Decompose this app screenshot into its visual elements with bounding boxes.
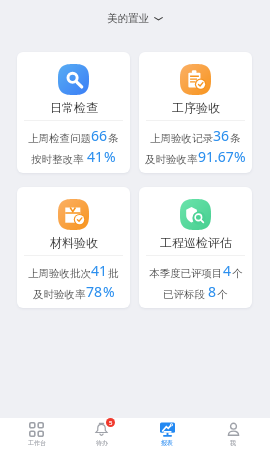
staticText: 78 bbox=[86, 282, 103, 301]
button[interactable]: 日常检查 bbox=[17, 52, 130, 173]
staticText: 上周验收记录 bbox=[150, 132, 213, 145]
staticText: 66 bbox=[91, 126, 108, 145]
staticText: 个 bbox=[217, 288, 228, 301]
staticText: 工作台 bbox=[28, 439, 46, 447]
staticText: 已评标段 bbox=[163, 287, 208, 301]
button[interactable]: 我 bbox=[200, 418, 266, 450]
staticText: 按时整改率 bbox=[31, 152, 87, 166]
staticText: 及时验收率 bbox=[33, 288, 86, 301]
staticText: 报表 bbox=[161, 439, 173, 447]
staticText: 36 bbox=[213, 126, 230, 145]
staticText: 工程巡检评估 bbox=[160, 235, 232, 250]
staticText: 本季度已评项目 bbox=[149, 267, 223, 280]
staticText: 上周检查问题 bbox=[28, 132, 91, 145]
staticText: 91.67 bbox=[198, 147, 234, 166]
staticText: % bbox=[104, 147, 116, 166]
staticText: 待办 bbox=[96, 439, 108, 447]
staticText: 上周验收批次 bbox=[28, 267, 91, 280]
staticText: 个 bbox=[232, 267, 243, 280]
button[interactable]: 工序验收 bbox=[139, 52, 252, 173]
staticText: 41 bbox=[91, 261, 108, 280]
staticText: 美的置业 bbox=[107, 12, 149, 25]
staticText: 41 bbox=[87, 147, 104, 166]
staticText: 8 bbox=[208, 282, 217, 301]
staticText: 材料验收 bbox=[50, 235, 98, 250]
staticText: 4 bbox=[223, 261, 232, 280]
staticText: % bbox=[103, 282, 115, 301]
staticText: % bbox=[234, 147, 246, 166]
staticText: 条 bbox=[108, 132, 119, 145]
staticText: 我 bbox=[230, 439, 236, 447]
staticText: 及时验收率 bbox=[145, 153, 198, 166]
staticText: 日常检查 bbox=[50, 100, 98, 115]
button[interactable]: 材料验收 bbox=[17, 187, 130, 308]
staticText: 工序验收 bbox=[172, 100, 220, 115]
staticText: 条 bbox=[230, 132, 241, 145]
button[interactable]: 5 bbox=[69, 418, 134, 450]
staticText: 5 bbox=[109, 419, 113, 427]
button[interactable]: 美的置业 bbox=[101, 9, 169, 28]
button[interactable]: 报表 bbox=[134, 418, 200, 450]
staticText: 批 bbox=[108, 267, 119, 280]
button[interactable]: 工作台 bbox=[4, 418, 69, 450]
button[interactable]: 工程巡检评估 bbox=[139, 187, 252, 308]
